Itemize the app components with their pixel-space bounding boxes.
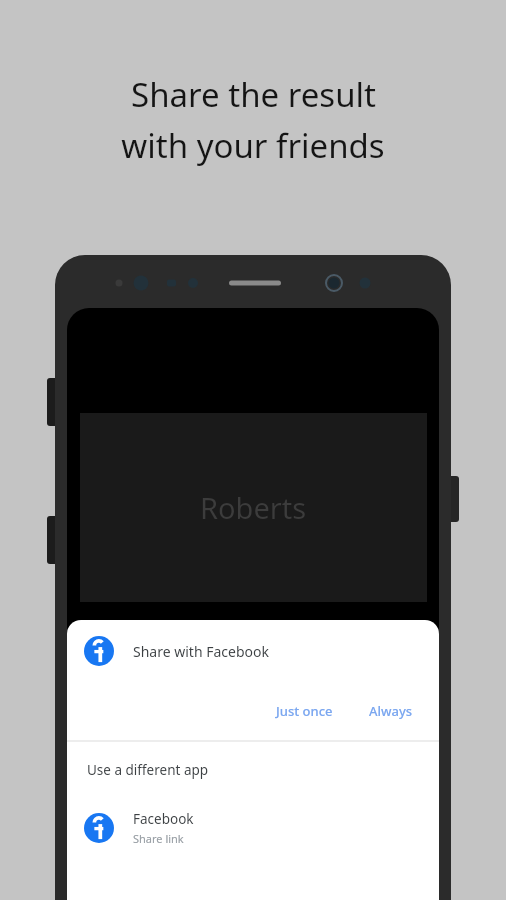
staticText: Always bbox=[369, 702, 413, 720]
staticText: with your friends bbox=[121, 123, 385, 168]
button[interactable]: Just once bbox=[266, 694, 343, 728]
staticText: Roberts bbox=[200, 488, 307, 527]
button[interactable]: Always bbox=[359, 694, 423, 728]
staticText: Use a different app bbox=[87, 761, 209, 779]
staticText: Share the result bbox=[131, 72, 376, 117]
staticText: Just once bbox=[276, 702, 333, 720]
other: Facebook bbox=[84, 813, 114, 843]
button[interactable]: Facebook bbox=[67, 620, 439, 682]
other: Facebook bbox=[84, 636, 114, 666]
button[interactable]: Facebook bbox=[67, 798, 439, 858]
staticText: Share with Facebook bbox=[133, 642, 269, 661]
staticText: Share link bbox=[133, 831, 184, 846]
staticText: Facebook bbox=[133, 810, 194, 828]
